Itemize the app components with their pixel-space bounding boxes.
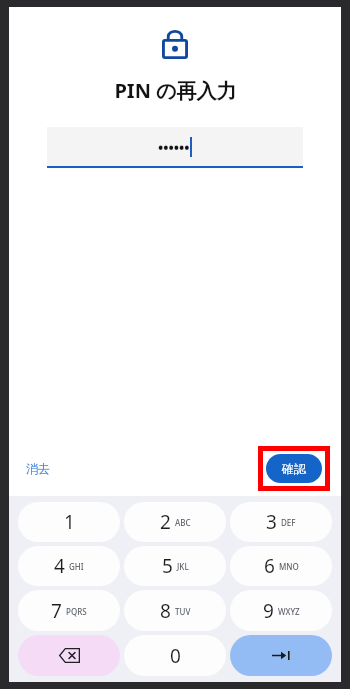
staticText: 0 [170,643,181,669]
staticText: 4 [54,553,65,579]
staticText: PQRS [66,606,87,617]
staticText: JKL [177,561,189,572]
button[interactable]: Backspace [18,635,120,676]
staticText: WXYZ [278,606,300,617]
staticText: DEF [281,517,296,528]
staticText: •••••• [158,138,190,157]
staticText: 7 [51,598,62,624]
staticText: PIN の再入力 [114,77,237,104]
button[interactable]: 3 [230,502,332,542]
staticText: 2 [160,509,171,535]
staticText: 8 [160,598,171,624]
staticText: TUV [175,606,191,617]
staticText: 確認 [282,461,306,476]
staticText: 5 [162,553,173,579]
button[interactable]: 4 [18,546,120,586]
button[interactable]: 9 [230,590,332,631]
button[interactable]: 0 [124,635,226,676]
staticText: 消去 [26,461,50,476]
button[interactable]: 1 [18,502,120,542]
staticText: MNO [279,561,299,572]
button[interactable]: 2 [124,502,226,542]
button[interactable]: 5 [124,546,226,586]
button[interactable]: 8 [124,590,226,631]
button[interactable]: Next [230,635,332,676]
button[interactable]: 7 [18,590,120,631]
button[interactable]: •••••• [47,127,303,166]
button[interactable]: 確認 [266,454,322,483]
staticText: 9 [263,598,274,624]
button[interactable]: 消去 [20,456,56,481]
staticText: 3 [266,509,277,535]
staticText: 1 [64,509,75,535]
staticText: 6 [264,553,275,579]
staticText: ABC [175,517,191,528]
staticText: GHI [69,561,84,572]
button[interactable]: 6 [230,546,332,586]
